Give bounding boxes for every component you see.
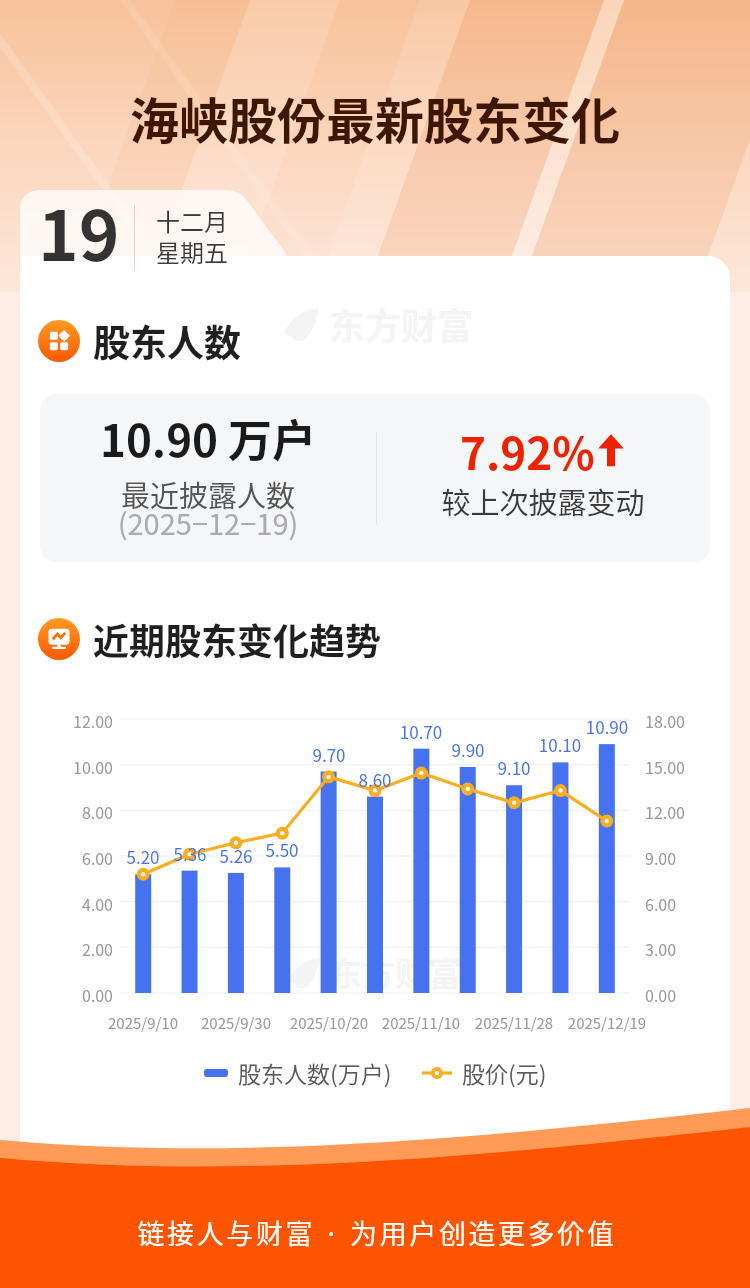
staticText: 6.00 [645, 892, 677, 915]
staticText: 股东人数(万户) [238, 1056, 392, 1089]
staticText: 2025/9/10 [98, 1012, 188, 1034]
staticText: 2025/10/20 [284, 1012, 374, 1034]
staticText: 9.90 [438, 737, 498, 762]
staticText: 15.00 [645, 755, 685, 778]
staticText: 10.70 [391, 719, 451, 744]
staticText: 9.70 [299, 742, 359, 767]
staticText: 2025/11/10 [376, 1012, 466, 1034]
staticText: 9.00 [645, 846, 677, 869]
staticText: 星期五 [156, 234, 228, 269]
staticText: 8.60 [345, 767, 405, 792]
staticText: 最近披露人数 [40, 473, 376, 515]
staticText: 10.90 [577, 714, 637, 739]
staticText: 0.00 [63, 983, 113, 1006]
staticText: 8.00 [63, 800, 113, 823]
staticText: 10.10 [530, 732, 590, 757]
staticText: 东方财富 [329, 948, 462, 996]
staticText: 较上次披露变动 [376, 480, 710, 522]
staticText: 6.00 [63, 846, 113, 869]
staticText: 2025/9/30 [191, 1012, 281, 1034]
staticText: 5.26 [206, 843, 266, 868]
staticText: 10.90 万户 [40, 406, 376, 470]
staticText: 2025/12/19 [562, 1012, 652, 1034]
staticText: 链接人与财富 · 为用户创造更多价值 [2, 1213, 750, 1252]
button[interactable]: 10.90 万户 [40, 394, 710, 562]
staticText: 9.10 [484, 755, 544, 780]
staticText: 12.00 [645, 800, 685, 823]
staticText: 十二月 [156, 203, 228, 238]
staticText: 近期股东变化趋势 [93, 613, 382, 665]
staticText: 4.00 [63, 892, 113, 915]
staticText: 5.20 [113, 844, 173, 869]
staticText: 东方财富 [329, 298, 474, 350]
staticText: (2025−12−19) [40, 501, 376, 543]
staticText: 0.00 [645, 983, 677, 1006]
button[interactable]: Shareholders [38, 314, 241, 368]
staticText: 18.00 [645, 709, 685, 732]
staticText: 2025/11/28 [469, 1012, 559, 1034]
staticText: 3.00 [645, 937, 677, 960]
staticText: 12.00 [63, 709, 113, 732]
staticText: 19 [38, 181, 120, 281]
staticText: 5.36 [160, 841, 220, 866]
staticText: 7.92% [460, 419, 595, 483]
staticText: 2.00 [63, 937, 113, 960]
staticText: 股东人数 [93, 314, 241, 368]
staticText: 10.00 [63, 755, 113, 778]
button[interactable]: Trend [38, 613, 382, 665]
other: Trend [38, 618, 80, 660]
other: Shareholders [38, 320, 80, 362]
staticText: 股价(元) [462, 1056, 547, 1089]
staticText: 5.50 [252, 837, 312, 862]
staticText: 海峡股份最新股东变化 [0, 82, 750, 153]
